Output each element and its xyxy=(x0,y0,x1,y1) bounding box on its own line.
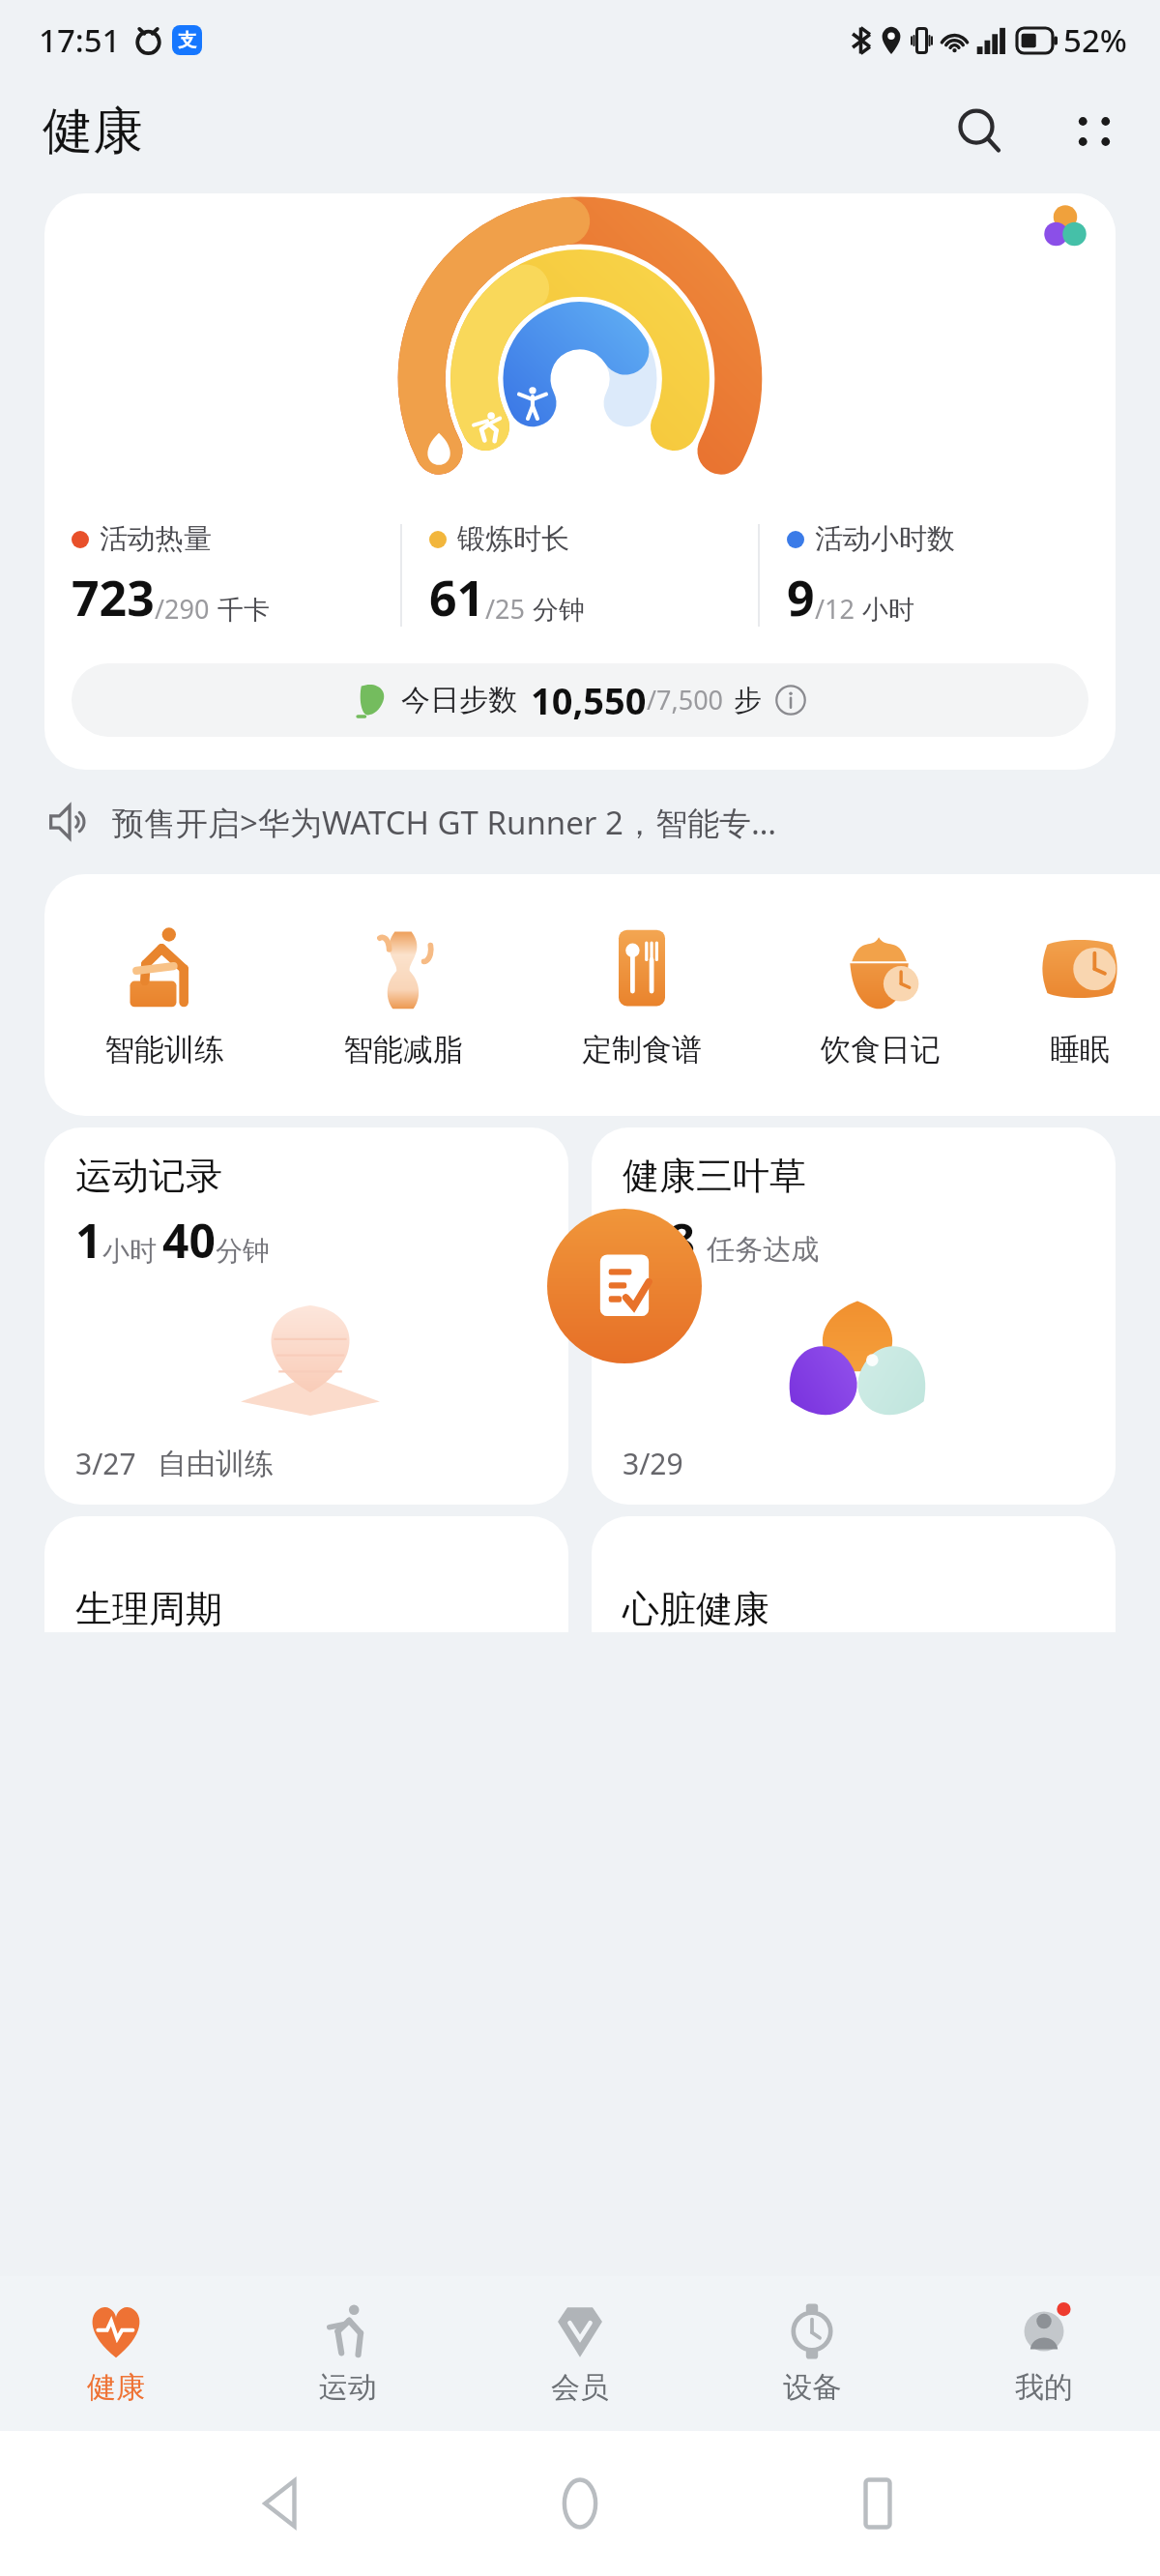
staticText: 设备 xyxy=(783,2369,841,2406)
staticText: 运动记录 xyxy=(75,1153,222,1199)
button[interactable]: 活动小时数 xyxy=(760,503,1116,648)
staticText: 61 xyxy=(429,565,485,630)
button[interactable]: Health clover shortcut xyxy=(1015,193,1116,259)
staticText: 睡眠 xyxy=(1050,1031,1110,1068)
staticText: /290 xyxy=(155,591,210,627)
button[interactable]: 今日步数 xyxy=(72,663,1088,737)
staticText: 健康三叶草 xyxy=(623,1153,806,1199)
button[interactable]: 会员 xyxy=(464,2276,696,2431)
staticText: 健康 xyxy=(43,100,143,163)
staticText: 千卡 xyxy=(217,594,270,627)
staticText: /25 xyxy=(485,591,525,627)
button[interactable]: 活动热量 xyxy=(44,193,1116,770)
staticText: 会员 xyxy=(551,2369,609,2406)
staticText: 分钟 xyxy=(216,1234,270,1268)
staticText: 3/8 xyxy=(623,1209,695,1272)
staticText: /12 xyxy=(815,591,855,627)
staticText: 723 xyxy=(72,565,155,630)
button[interactable]: Home xyxy=(527,2450,633,2557)
button[interactable]: Add health record xyxy=(547,1209,702,1363)
staticText: /7,500 xyxy=(647,682,724,717)
button[interactable]: 饮食日记 xyxy=(761,874,1000,1116)
staticText: 小时 xyxy=(862,594,914,627)
staticText: 任务达成 xyxy=(707,1232,819,1268)
button[interactable]: 智能减脂 xyxy=(283,874,522,1116)
staticText: 饮食日记 xyxy=(821,1031,941,1068)
staticText: 9 xyxy=(787,565,815,630)
staticText: 活动热量 xyxy=(100,521,212,557)
button[interactable]: 运动 xyxy=(232,2276,464,2431)
button[interactable]: Search xyxy=(938,89,1023,174)
staticText: 小时 xyxy=(102,1234,157,1268)
staticText: 心脏健康 xyxy=(623,1586,769,1632)
staticText: 1 xyxy=(75,1209,102,1272)
staticText: 3/29 xyxy=(623,1444,683,1483)
button[interactable]: 锻炼时长 xyxy=(402,503,758,648)
button[interactable]: 生理周期 xyxy=(44,1516,568,1632)
staticText: 我的 xyxy=(1015,2369,1073,2406)
staticText: 生理周期 xyxy=(75,1586,222,1632)
staticText: 活动小时数 xyxy=(815,521,955,557)
button[interactable]: More options xyxy=(1052,89,1137,174)
staticText: 智能减脂 xyxy=(343,1031,463,1068)
button[interactable]: 心脏健康 xyxy=(592,1516,1116,1632)
staticText: 支 xyxy=(178,29,196,52)
staticText: 10,550 xyxy=(531,675,647,725)
staticText: 今日步数 xyxy=(401,682,517,718)
button[interactable]: 智能训练 xyxy=(44,874,283,1116)
staticText: 步 xyxy=(734,683,762,718)
staticText: 运动 xyxy=(319,2369,377,2406)
button[interactable]: 健康 xyxy=(0,2276,232,2431)
button[interactable]: 睡眠 xyxy=(1000,874,1160,1116)
button[interactable]: 活动热量 xyxy=(44,503,400,648)
staticText: 17:51 xyxy=(39,18,121,62)
button[interactable]: 健康三叶草 xyxy=(592,1127,1116,1505)
button[interactable]: 设备 xyxy=(696,2276,928,2431)
button[interactable]: 定制食谱 xyxy=(522,874,761,1116)
staticText: 分钟 xyxy=(533,594,585,627)
staticText: 健康 xyxy=(87,2369,145,2406)
staticText: 3/27 xyxy=(75,1444,136,1483)
button[interactable]: 运动记录 xyxy=(44,1127,568,1505)
staticText: 自由训练 xyxy=(158,1446,274,1482)
button[interactable]: 预售开启>华为WATCH GT Runner 2，智能专… xyxy=(0,777,1160,866)
button[interactable]: 我的 xyxy=(928,2276,1160,2431)
button[interactable]: Recent apps xyxy=(825,2450,931,2557)
button[interactable]: Back xyxy=(229,2450,335,2557)
staticText: 预售开启>华为WATCH GT Runner 2，智能专… xyxy=(112,801,777,844)
staticText: 锻炼时长 xyxy=(457,521,569,557)
staticText: 智能训练 xyxy=(104,1031,224,1068)
staticText: 40 xyxy=(162,1209,216,1272)
staticText: 52% xyxy=(1063,18,1127,62)
staticText: 定制食谱 xyxy=(582,1031,702,1068)
